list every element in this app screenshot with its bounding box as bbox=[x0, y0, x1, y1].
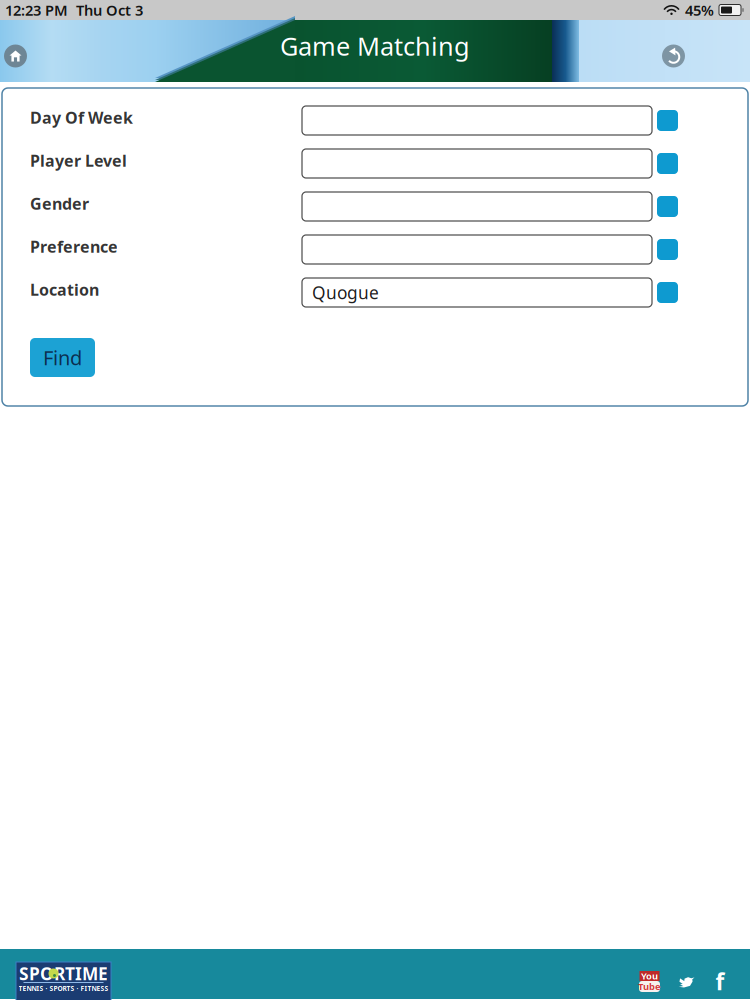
button[interactable]: Facebook bbox=[705, 969, 735, 993]
staticText: You bbox=[641, 970, 658, 982]
staticText: Player Level bbox=[30, 150, 127, 171]
staticText: f bbox=[715, 966, 724, 996]
button[interactable]: Pick Day Of Week bbox=[657, 110, 678, 131]
staticText: Quogue bbox=[312, 281, 379, 304]
staticText: TENNIS · SPORTS · FITNESS bbox=[18, 984, 108, 993]
button[interactable]: Gender bbox=[302, 192, 652, 221]
staticText: Gender bbox=[30, 193, 89, 214]
staticText: Preference bbox=[30, 236, 118, 257]
staticText: Find bbox=[43, 344, 82, 371]
button[interactable]: Home bbox=[0, 39, 31, 73]
button[interactable]: Pick Player Level bbox=[657, 153, 678, 174]
button[interactable]: Back bbox=[658, 39, 689, 73]
staticText: Location bbox=[30, 279, 99, 300]
button[interactable]: Day Of Week bbox=[302, 106, 652, 135]
staticText: Thu Oct 3 bbox=[76, 0, 143, 20]
button[interactable]: Location bbox=[302, 278, 652, 307]
button[interactable]: Preference bbox=[302, 235, 652, 264]
button[interactable]: Pick Preference bbox=[657, 239, 678, 260]
button[interactable]: YouTube bbox=[638, 969, 660, 993]
staticText: 45% bbox=[685, 0, 714, 20]
staticText: Tube bbox=[638, 980, 661, 993]
button[interactable]: Find bbox=[30, 338, 95, 377]
button[interactable]: Pick Gender bbox=[657, 196, 678, 217]
staticText: SPORTIME bbox=[19, 962, 108, 985]
staticText: Game Matching bbox=[280, 29, 470, 63]
button[interactable]: Player Level bbox=[302, 149, 652, 178]
staticText: Day Of Week bbox=[30, 107, 133, 128]
button[interactable]: Pick Location bbox=[657, 282, 678, 303]
staticText: 12:23 PM bbox=[5, 0, 68, 20]
button[interactable]: Twitter bbox=[668, 969, 705, 993]
